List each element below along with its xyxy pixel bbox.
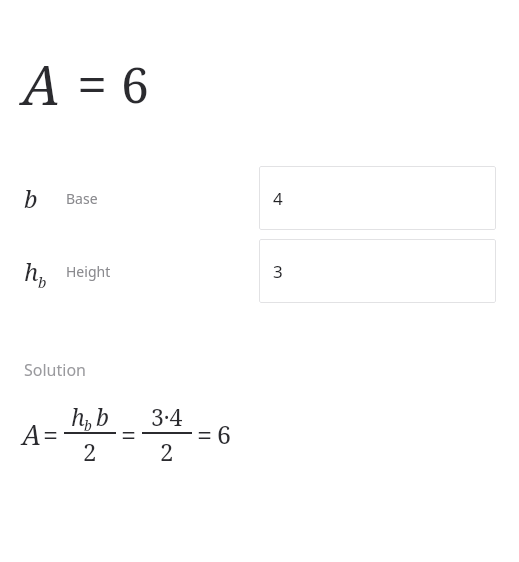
staticText: 2 [83, 435, 97, 467]
staticText: 6 [217, 417, 231, 451]
staticText: = [121, 416, 137, 453]
staticText: 4 [273, 187, 283, 210]
staticText: = [77, 47, 108, 121]
staticText: h [71, 401, 85, 431]
staticText: A [22, 416, 42, 453]
staticText: Solution [24, 359, 86, 381]
button[interactable]: 4 [259, 166, 496, 230]
staticText: Base [66, 189, 98, 208]
staticText: 2 [160, 435, 174, 467]
staticText: = [197, 416, 213, 453]
staticText: Height [66, 262, 111, 281]
staticText: b [96, 401, 109, 431]
staticText: 3 [273, 260, 283, 283]
staticText: = [43, 416, 59, 453]
staticText: 6 [121, 50, 149, 118]
staticText: b [84, 416, 92, 435]
staticText: h [24, 255, 39, 288]
staticText: b [24, 182, 38, 215]
staticText: b [38, 272, 47, 292]
staticText: A [22, 47, 61, 121]
staticText: 3·4 [151, 401, 183, 431]
button[interactable]: 3 [259, 239, 496, 303]
